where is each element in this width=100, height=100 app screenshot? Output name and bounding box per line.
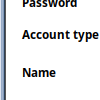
staticText: Password xyxy=(22,0,77,10)
staticText: Name xyxy=(22,65,56,80)
staticText: Account type xyxy=(22,27,99,42)
button[interactable]: Name xyxy=(22,66,98,79)
button[interactable]: Password xyxy=(22,0,98,9)
button[interactable]: Account type xyxy=(22,28,98,41)
